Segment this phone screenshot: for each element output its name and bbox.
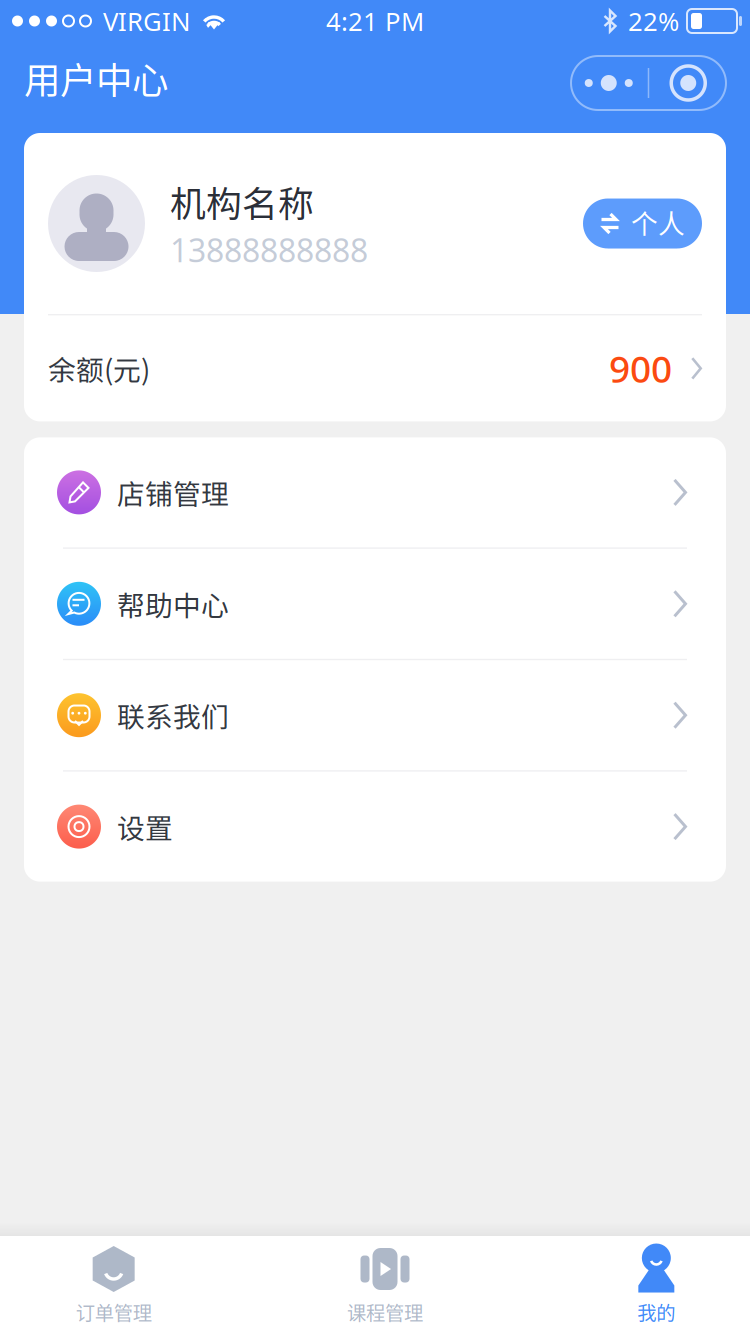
staticText: 订单管理 <box>76 1298 152 1326</box>
button[interactable]: 课程管理 <box>249 1230 521 1334</box>
staticText: 用户中心 <box>24 52 168 104</box>
button[interactable]: 余额(元) <box>24 315 726 421</box>
staticText: 900 <box>609 343 672 394</box>
staticText: 机构名称 <box>170 175 314 227</box>
staticText: 设置 <box>117 806 173 847</box>
staticText: 店铺管理 <box>117 472 229 512</box>
staticText: 联系我们 <box>117 695 229 735</box>
button[interactable]: 联系我们 <box>24 660 726 770</box>
staticText: 帮助中心 <box>117 584 229 624</box>
button[interactable]: 设置 <box>24 772 726 882</box>
staticText: VIRGIN <box>103 3 191 38</box>
staticText: 4:21 PM <box>326 3 424 38</box>
button[interactable]: 帮助中心 <box>24 549 726 659</box>
button[interactable]: 订单管理 <box>0 1230 249 1334</box>
staticText: 我的 <box>637 1298 675 1326</box>
staticText: 余额(元) <box>48 348 150 388</box>
button[interactable]: 我的 <box>521 1230 750 1334</box>
staticText: 课程管理 <box>347 1298 423 1326</box>
button[interactable]: 个人 <box>583 198 702 248</box>
staticText: 个人 <box>631 203 685 242</box>
staticText: 13888888888 <box>170 228 368 272</box>
staticText: 22% <box>628 3 679 38</box>
button[interactable]: More <box>570 56 648 110</box>
button[interactable]: 店铺管理 <box>24 437 726 547</box>
button[interactable]: Close <box>649 56 727 110</box>
